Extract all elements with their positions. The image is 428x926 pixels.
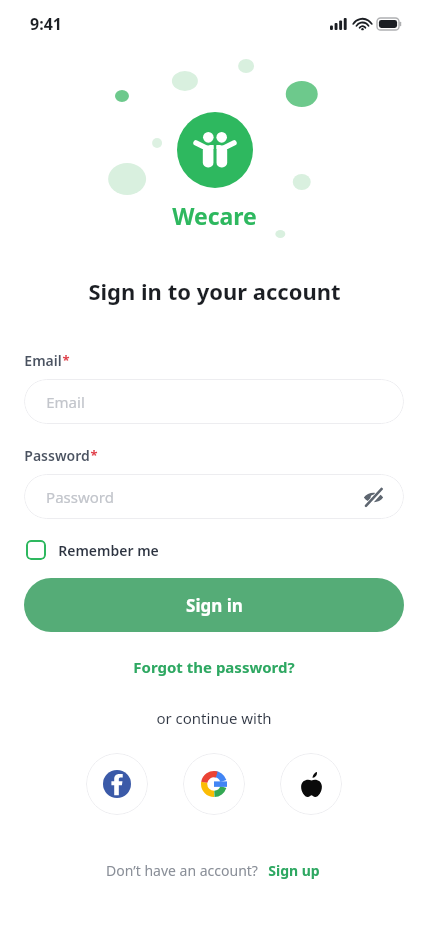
button[interactable]: Email	[24, 379, 404, 424]
staticText: Email	[24, 351, 62, 370]
staticText: Sign up	[268, 861, 320, 880]
button[interactable]: Sign in with Apple	[280, 753, 342, 815]
staticText: Wecare	[172, 200, 257, 231]
button[interactable]: Show password	[360, 484, 386, 510]
staticText: *	[62, 351, 70, 369]
staticText: 9:41	[30, 13, 62, 35]
staticText: Remember me	[58, 541, 159, 560]
button[interactable]: Forgot the password?	[127, 654, 301, 680]
staticText: Email	[46, 392, 85, 412]
button[interactable]: Sign in	[24, 578, 404, 632]
staticText: *	[90, 446, 98, 464]
staticText: Sign in	[186, 594, 243, 617]
staticText: Password	[46, 487, 114, 507]
button[interactable]: Sign up	[265, 859, 323, 882]
staticText: Don’t have an account?	[106, 861, 258, 880]
staticText: Sign in to your account	[88, 276, 341, 306]
button[interactable]: Remember me	[24, 538, 161, 562]
staticText: Forgot the password?	[133, 657, 295, 677]
button[interactable]: Sign in with Facebook	[86, 753, 148, 815]
staticText: or continue with	[156, 708, 272, 728]
button[interactable]: Password	[24, 474, 404, 519]
button[interactable]: Sign in with Google	[183, 753, 245, 815]
staticText: Password	[24, 446, 90, 465]
